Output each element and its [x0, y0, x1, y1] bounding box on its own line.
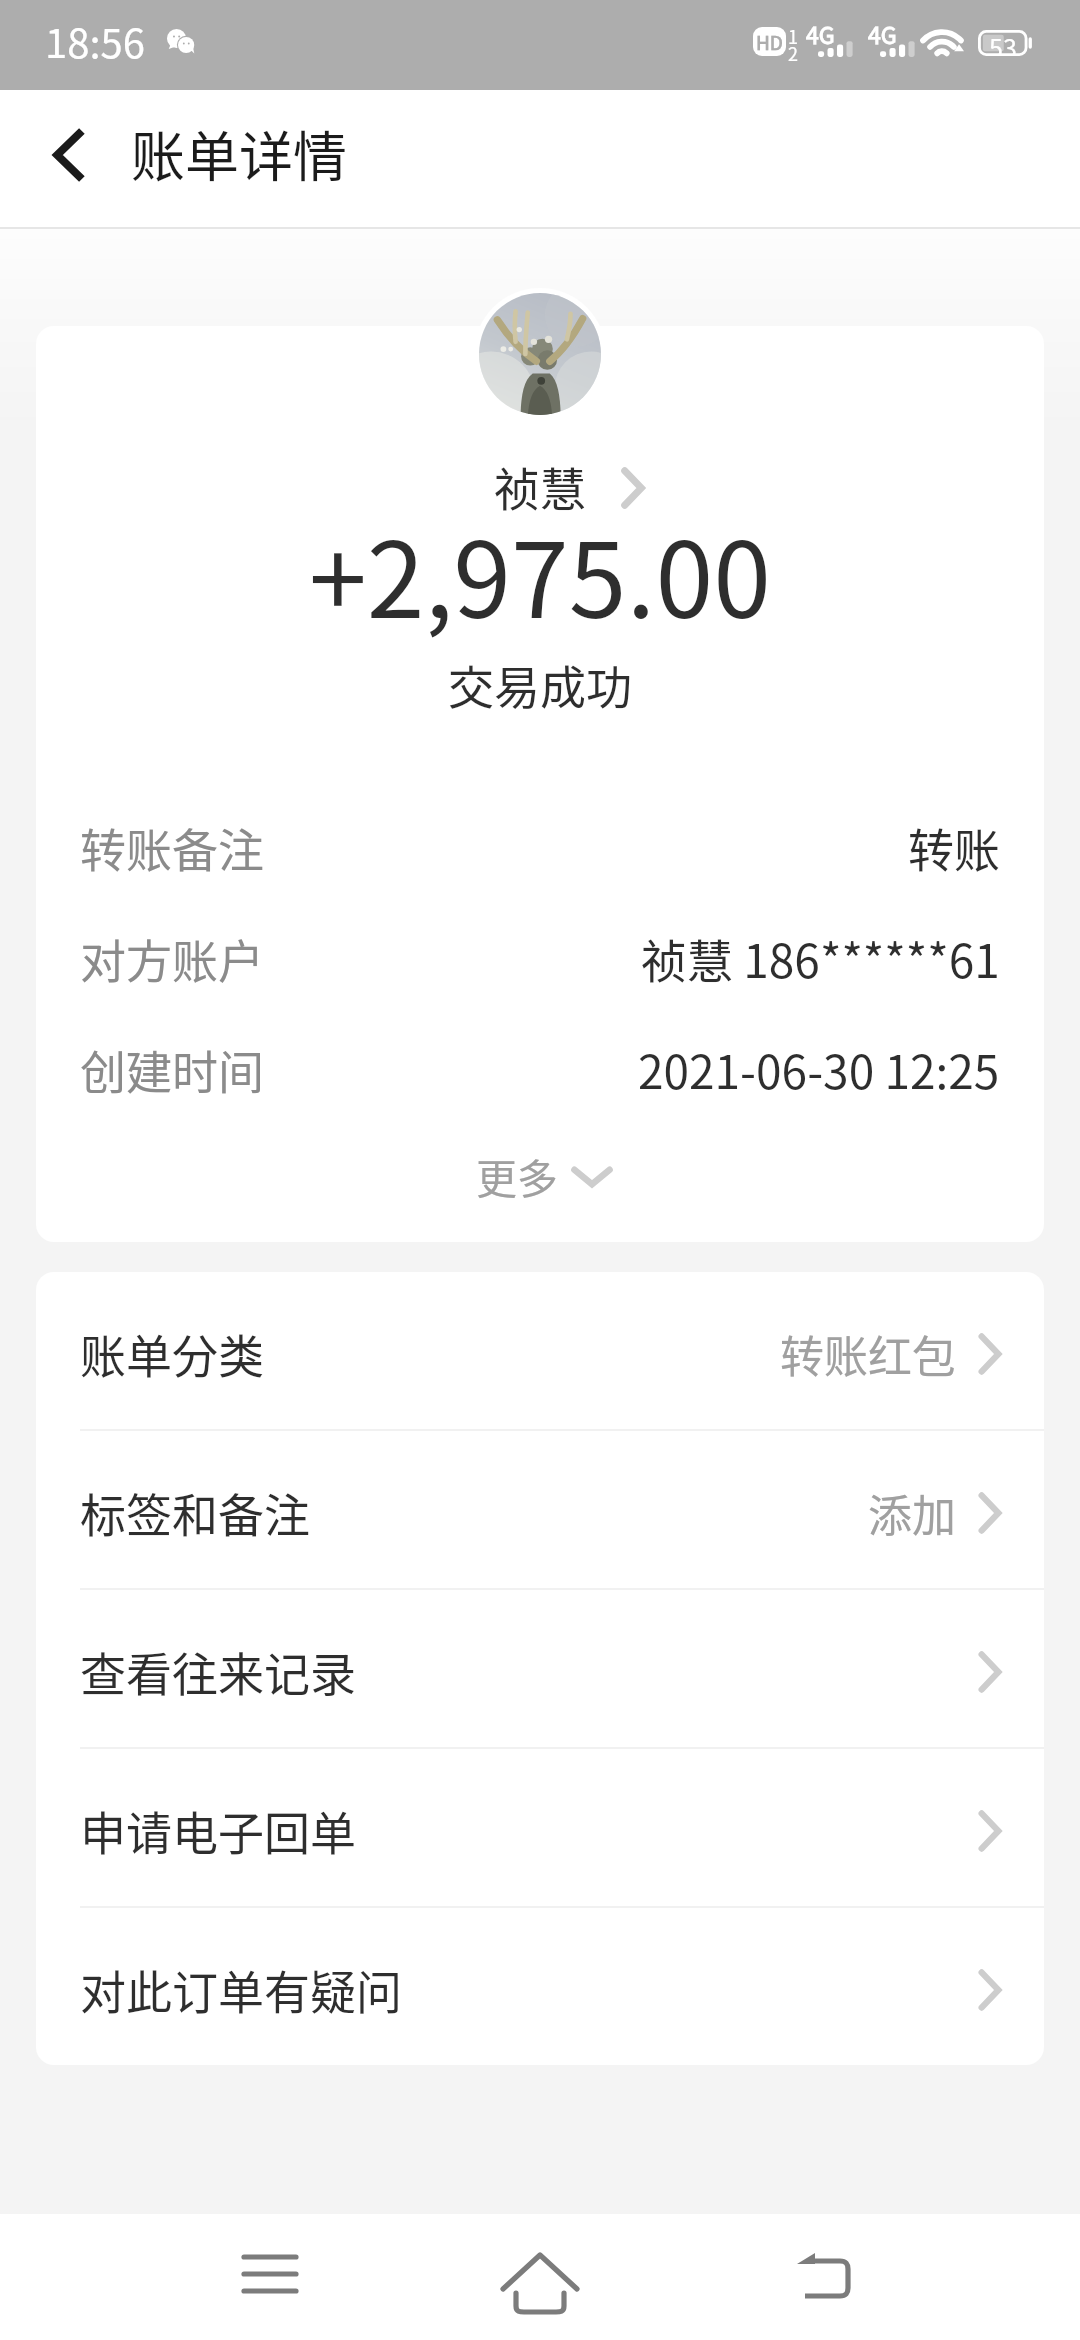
button[interactable]: Recent apps	[0, 2214, 360, 2340]
button[interactable]: Back	[640, 2214, 1000, 2340]
staticText: 账单分类	[80, 1320, 264, 1387]
staticText: 4G	[806, 17, 835, 50]
staticText: 更多	[476, 1146, 558, 1205]
staticText: 2021-06-30 12:25	[638, 1036, 1000, 1103]
staticText: 标签和备注	[80, 1479, 310, 1546]
staticText: 创建时间	[80, 1036, 264, 1103]
staticText: 53	[989, 29, 1017, 56]
button[interactable]: Back	[0, 90, 133, 228]
button[interactable]: 对此订单有疑问	[36, 1908, 1044, 2065]
staticText: 转账红包	[780, 1322, 956, 1386]
button[interactable]: 更多	[40, 1130, 1044, 1220]
staticText: 添加	[868, 1481, 956, 1545]
staticText: 查看往来记录	[80, 1638, 356, 1705]
staticText: 2	[788, 40, 798, 66]
staticText: 4G	[868, 17, 897, 50]
button[interactable]: 账单分类	[36, 1272, 1044, 1429]
staticText: HD	[756, 28, 783, 56]
staticText: 申请电子回单	[80, 1797, 356, 1864]
button[interactable]: Home	[450, 2214, 630, 2340]
staticText: 祯慧 186******61	[641, 925, 1000, 992]
button[interactable]: 查看往来记录	[36, 1590, 1044, 1747]
staticText: 祯慧	[494, 453, 586, 520]
staticText: 转账备注	[80, 814, 264, 881]
staticText: 1	[788, 23, 798, 49]
staticText: +2,975.00	[309, 497, 771, 648]
button[interactable]: 标签和备注	[36, 1431, 1044, 1588]
button[interactable]: 祯慧	[36, 443, 1044, 529]
staticText: 对方账户	[80, 925, 264, 992]
staticText: 转账	[908, 814, 1000, 881]
staticText: 账单详情	[131, 114, 347, 192]
staticText: 对此订单有疑问	[80, 1956, 402, 2023]
staticText: 交易成功	[448, 651, 632, 718]
button[interactable]: 申请电子回单	[36, 1749, 1044, 1906]
staticText: 18:56	[45, 12, 145, 70]
